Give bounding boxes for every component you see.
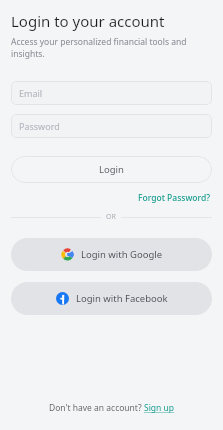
staticText: OR bbox=[106, 212, 116, 222]
button[interactable]: Login bbox=[11, 156, 212, 183]
button[interactable]: Forgot Password? bbox=[136, 190, 212, 206]
button[interactable]: Don't have an account? bbox=[11, 398, 212, 418]
other: Google logo bbox=[61, 248, 74, 261]
button[interactable]: Google logo bbox=[11, 238, 212, 271]
staticText: Login with Google bbox=[81, 248, 163, 261]
button[interactable]: Password bbox=[11, 114, 212, 138]
staticText: Email bbox=[19, 87, 43, 99]
staticText: Sign up bbox=[144, 402, 175, 414]
staticText: Forgot Password? bbox=[138, 192, 210, 204]
staticText: Don't have an account? bbox=[49, 402, 144, 414]
staticText: Login with Facebook bbox=[76, 292, 168, 305]
staticText: Password bbox=[19, 120, 60, 132]
staticText: Access your personalized financial tools… bbox=[11, 36, 212, 60]
staticText: Login to your account bbox=[11, 11, 165, 31]
button[interactable]: Email bbox=[11, 81, 212, 105]
button[interactable]: Facebook logo bbox=[11, 282, 212, 315]
other: Facebook logo bbox=[56, 292, 69, 305]
staticText: Login bbox=[99, 163, 124, 176]
